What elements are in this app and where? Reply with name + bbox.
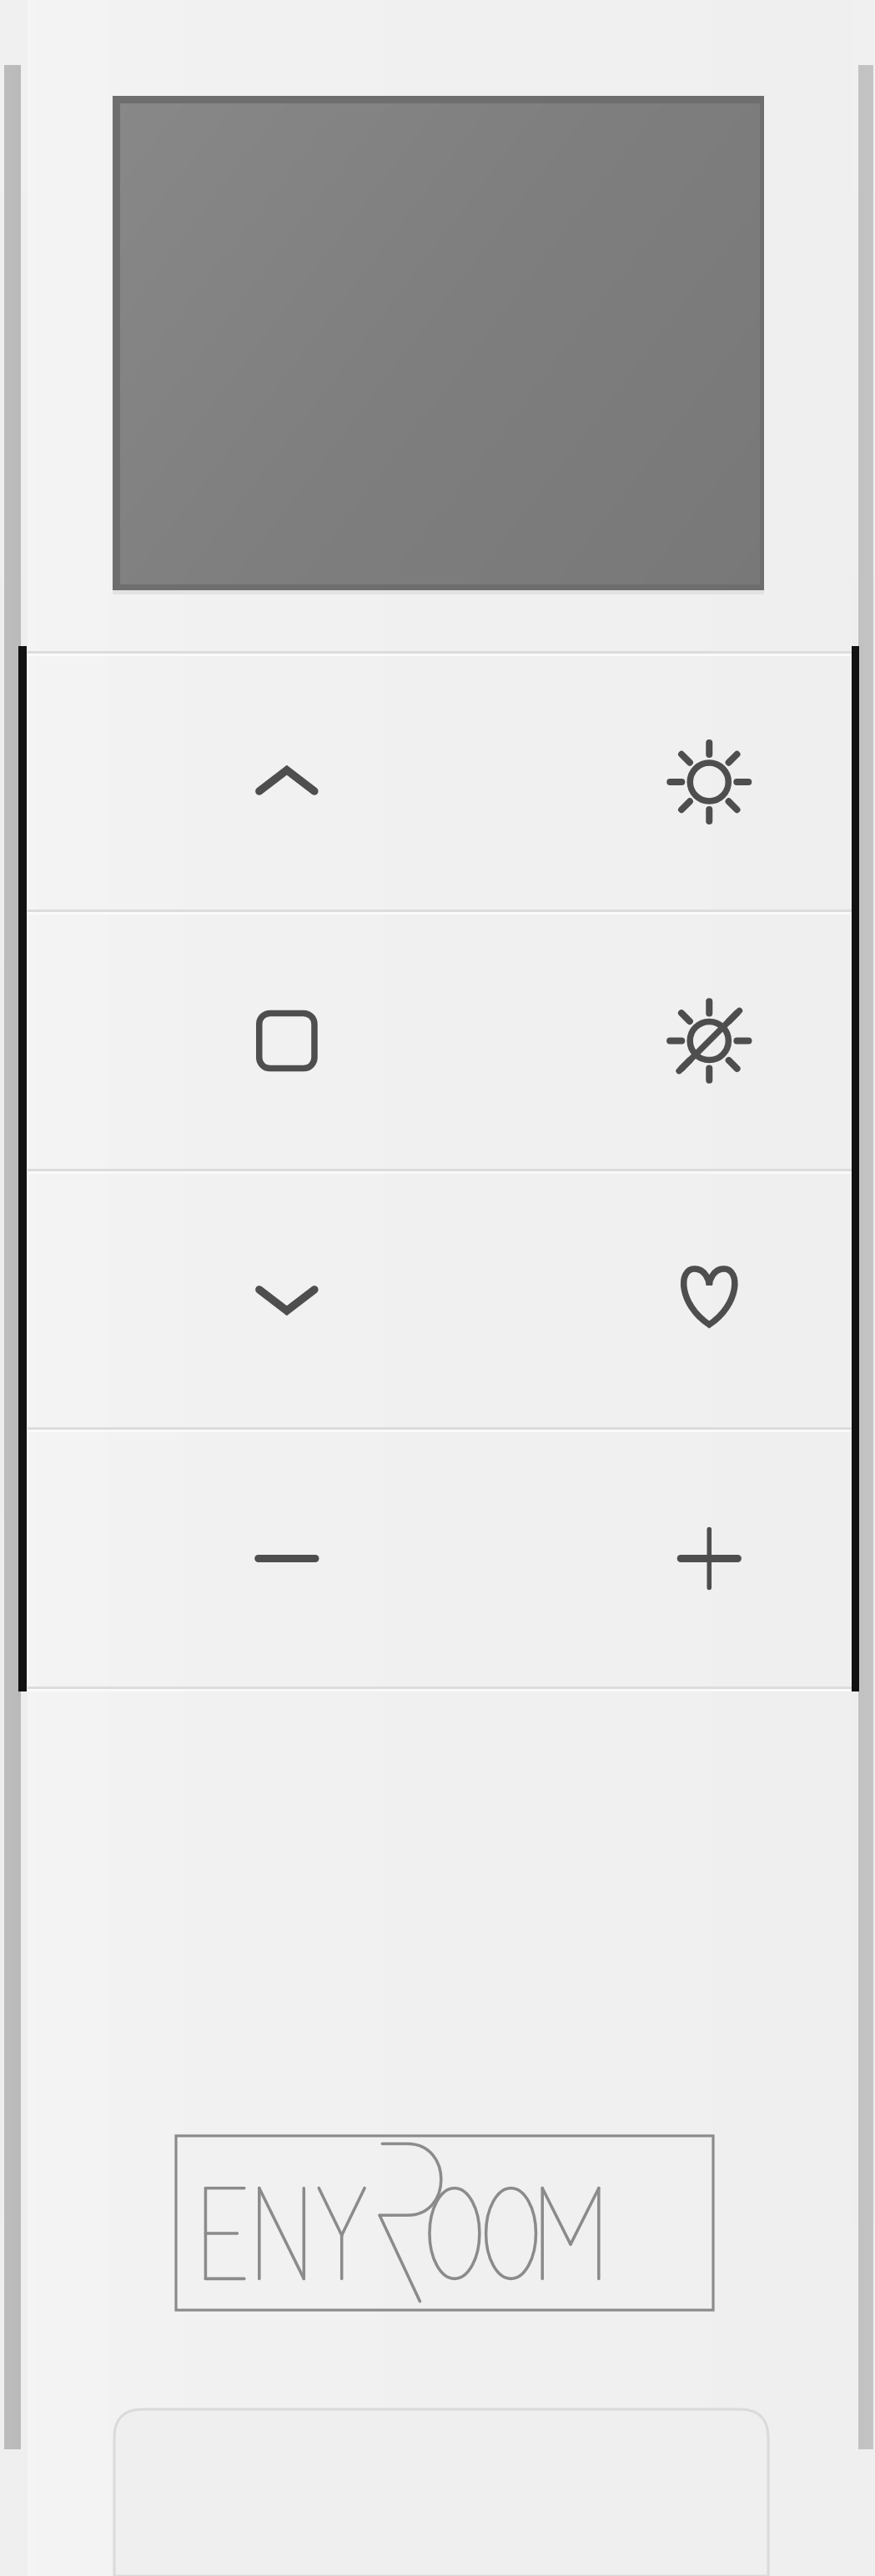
button[interactable]: Stop: [0, 911, 526, 1170]
button[interactable]: Favourite scene: [526, 1170, 875, 1429]
button[interactable]: Brightness up: [526, 653, 875, 911]
button[interactable]: Decrease: [0, 1429, 526, 1688]
button[interactable]: Down: [0, 1170, 526, 1429]
button[interactable]: Lights off: [526, 911, 875, 1170]
button[interactable]: Up: [0, 653, 526, 911]
button[interactable]: Increase: [526, 1429, 875, 1688]
